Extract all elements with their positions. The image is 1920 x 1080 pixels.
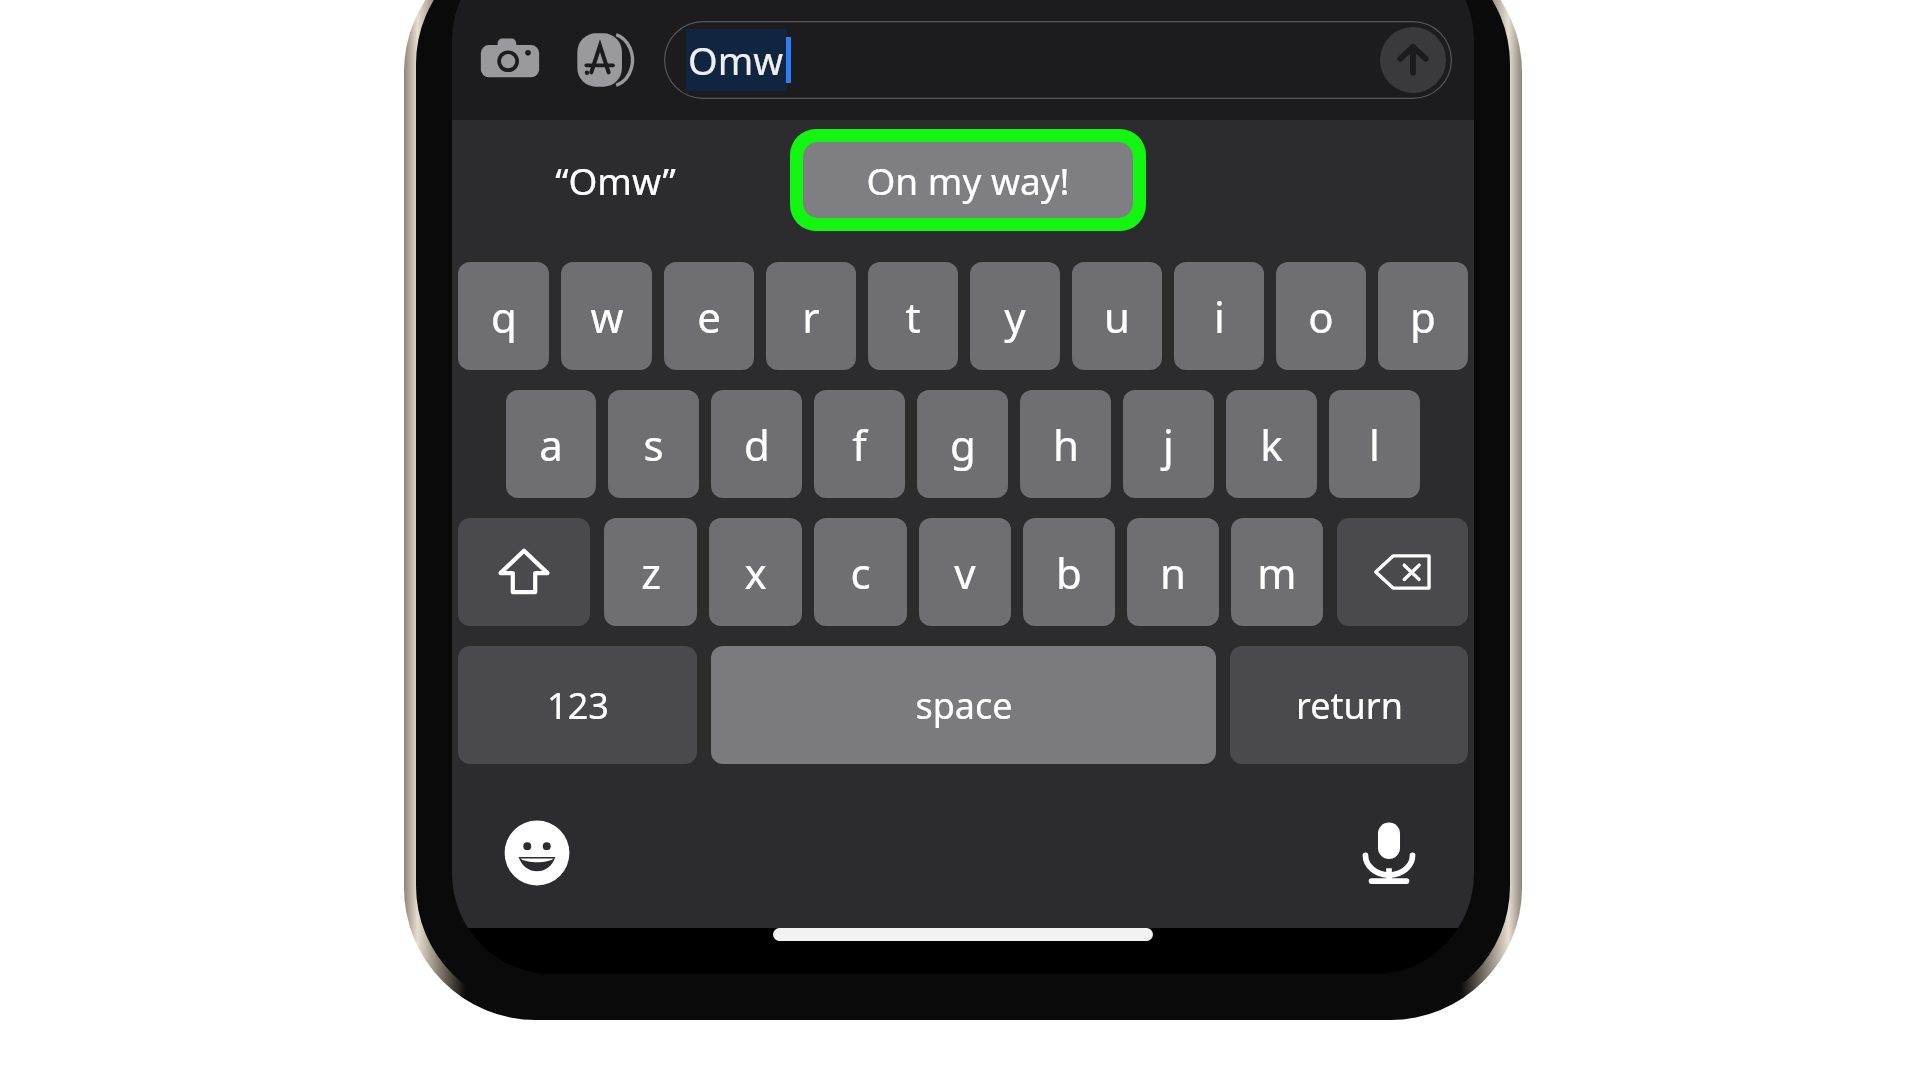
button[interactable]: p — [1378, 262, 1468, 370]
staticText: v — [954, 544, 976, 601]
staticText: j — [1163, 416, 1174, 473]
staticText: a — [539, 416, 563, 473]
button[interactable]: 123 — [458, 646, 697, 764]
staticText: y — [1004, 288, 1026, 345]
button[interactable]: k — [1226, 390, 1317, 498]
button[interactable]: return — [1230, 646, 1468, 764]
button[interactable]: y — [970, 262, 1060, 370]
button[interactable]: c — [814, 518, 907, 626]
staticText: u — [1104, 288, 1130, 345]
button[interactable]: u — [1072, 262, 1162, 370]
button[interactable]: q — [458, 262, 549, 370]
staticText: e — [697, 288, 721, 345]
button[interactable]: v — [919, 518, 1011, 626]
button[interactable]: a — [506, 390, 596, 498]
button[interactable]: Delete — [1337, 518, 1468, 626]
staticText: g — [950, 416, 976, 473]
staticText: l — [1369, 416, 1380, 473]
staticText: f — [852, 416, 867, 473]
staticText: z — [641, 544, 661, 601]
staticText: n — [1160, 544, 1186, 601]
button[interactable]: j — [1123, 390, 1214, 498]
button[interactable]: n — [1127, 518, 1219, 626]
staticText: c — [850, 544, 871, 601]
staticText: x — [744, 544, 767, 601]
staticText: “Omw” — [555, 155, 676, 205]
staticText: Omw — [688, 34, 784, 86]
button[interactable]: r — [766, 262, 856, 370]
button[interactable]: m — [1231, 518, 1323, 626]
staticText: q — [491, 288, 517, 345]
button[interactable]: “Omw” — [500, 134, 730, 226]
button[interactable]: i — [1174, 262, 1264, 370]
staticText: o — [1308, 288, 1334, 345]
button[interactable]: o — [1276, 262, 1366, 370]
button[interactable]: x — [709, 518, 802, 626]
staticText: 123 — [547, 681, 609, 730]
button[interactable]: Omw — [664, 21, 1452, 99]
button[interactable]: Emoji — [494, 810, 580, 896]
button[interactable]: d — [711, 390, 802, 498]
staticText: b — [1056, 544, 1082, 601]
button[interactable]: Camera — [474, 24, 546, 96]
button[interactable]: Apps — [568, 24, 640, 96]
button[interactable]: l — [1329, 390, 1420, 498]
staticText: p — [1410, 288, 1436, 345]
button[interactable]: On my way! — [803, 142, 1133, 218]
staticText: k — [1260, 416, 1283, 473]
staticText: r — [802, 288, 820, 345]
staticText: s — [643, 416, 664, 473]
staticText: m — [1257, 544, 1297, 601]
staticText: t — [905, 288, 921, 345]
button[interactable]: space — [711, 646, 1216, 764]
staticText: On my way! — [866, 155, 1070, 205]
button[interactable]: b — [1023, 518, 1115, 626]
button[interactable]: Send — [1380, 27, 1446, 93]
button[interactable]: z — [604, 518, 697, 626]
staticText: w — [590, 288, 624, 345]
staticText: return — [1296, 681, 1403, 730]
staticText: i — [1214, 288, 1225, 345]
button[interactable]: t — [868, 262, 958, 370]
staticText: d — [744, 416, 770, 473]
button[interactable]: e — [664, 262, 754, 370]
button[interactable]: Dictation — [1346, 810, 1432, 896]
button[interactable]: f — [814, 390, 905, 498]
button[interactable]: h — [1020, 390, 1111, 498]
staticText: h — [1053, 416, 1079, 473]
button[interactable]: w — [561, 262, 652, 370]
button[interactable]: Shift — [458, 518, 590, 626]
button[interactable]: g — [917, 390, 1008, 498]
staticText: space — [915, 681, 1013, 730]
button[interactable]: s — [608, 390, 699, 498]
